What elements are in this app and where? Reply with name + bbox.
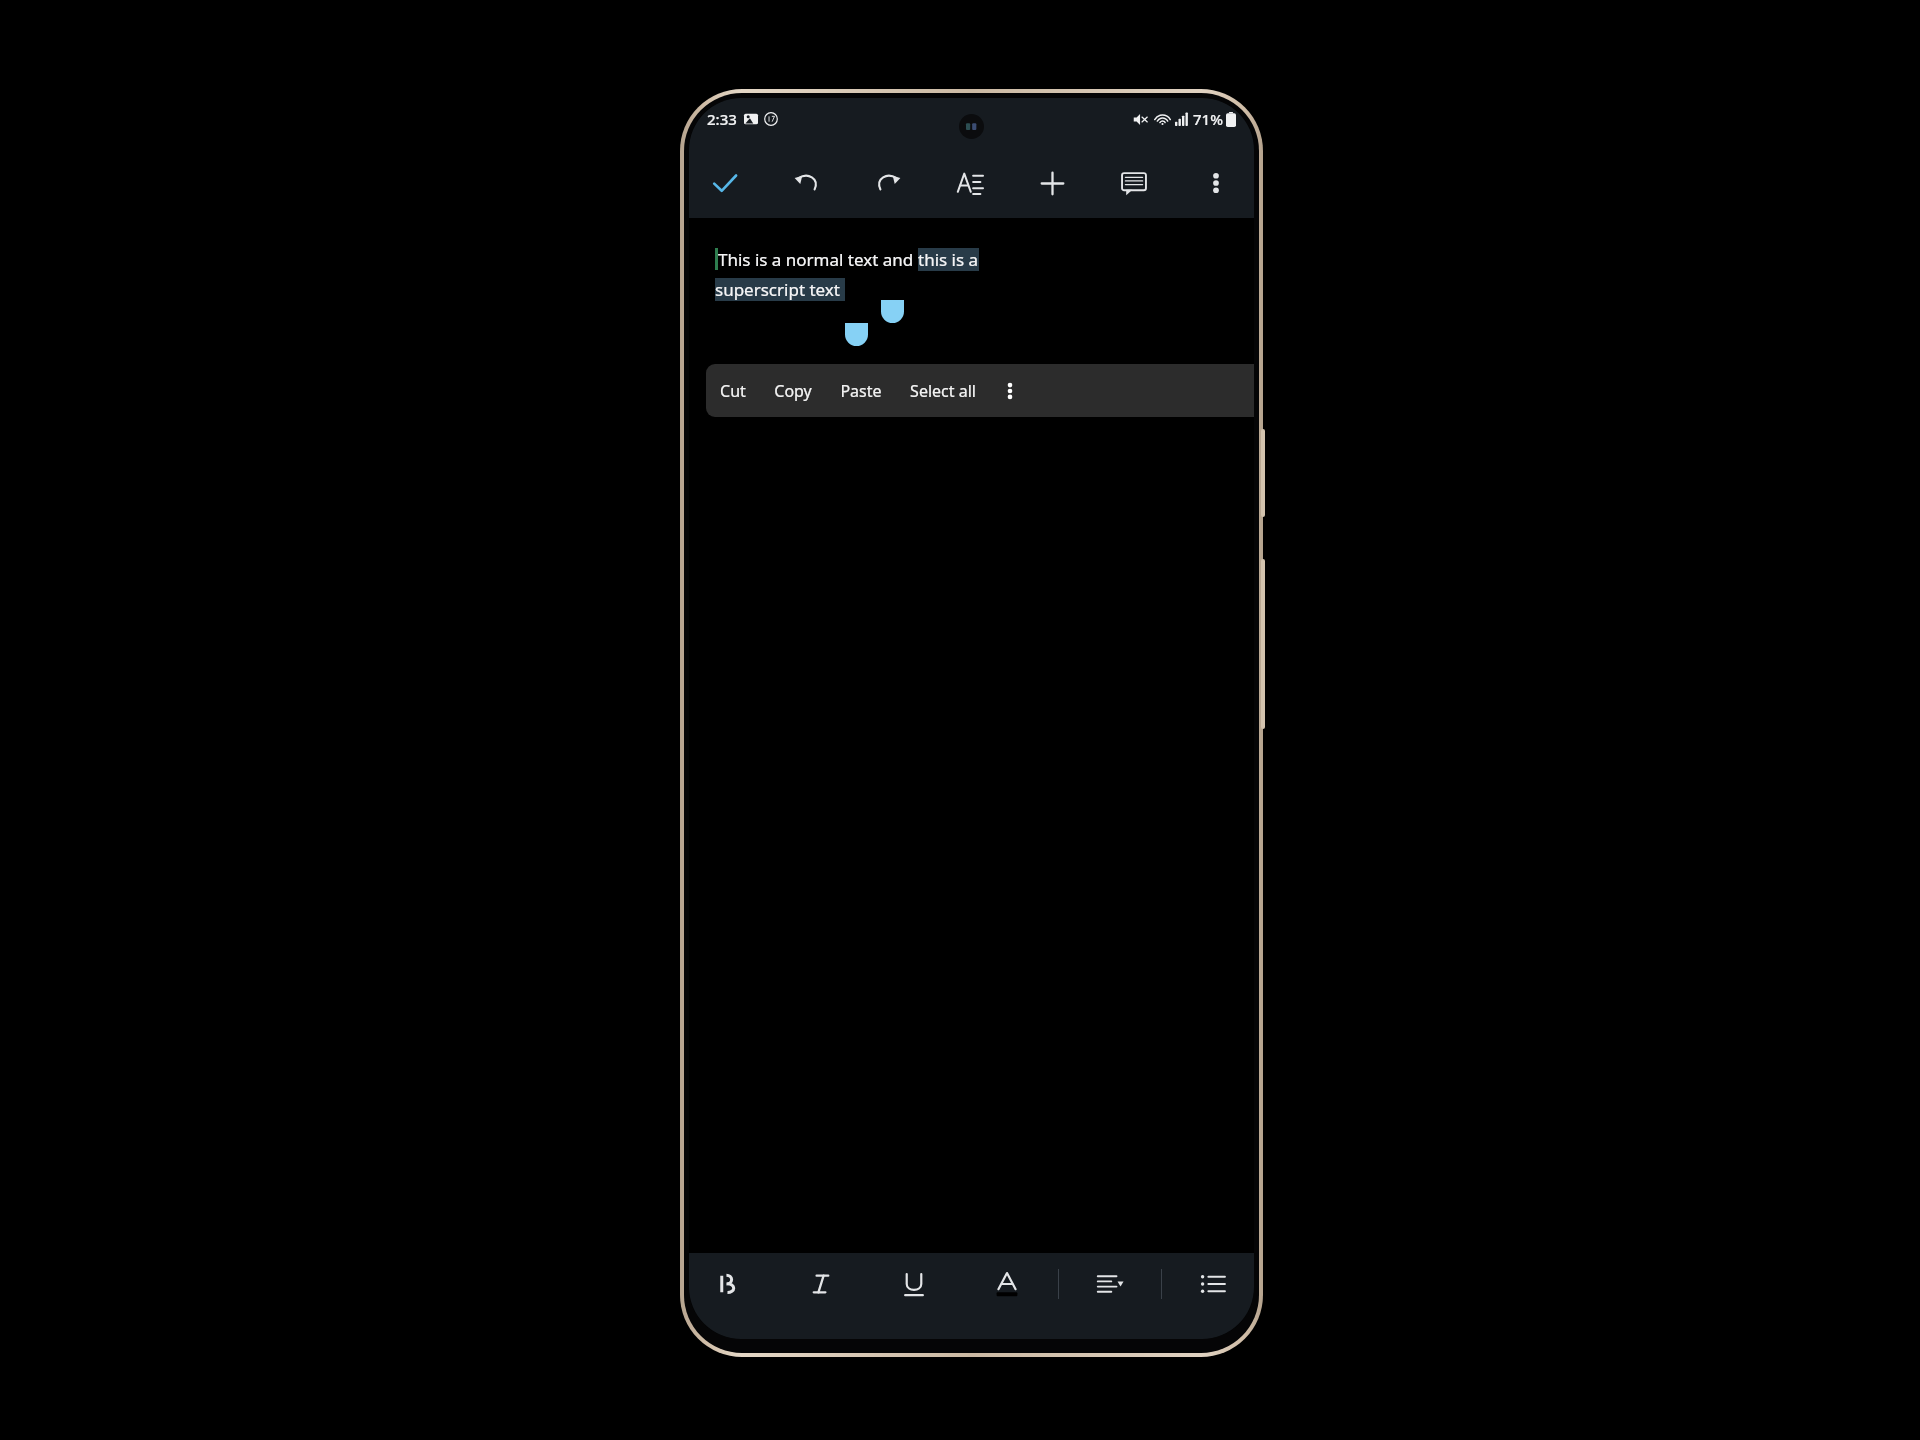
button[interactable]: Text formatting (946, 159, 994, 207)
staticText: 71% (1193, 109, 1223, 129)
button[interactable]: Text colour (984, 1261, 1030, 1307)
staticText: superscript text (715, 278, 845, 301)
button[interactable]: More clipboard options (990, 364, 1030, 417)
button[interactable]: Copy (760, 364, 826, 417)
button[interactable]: Alignment (1087, 1261, 1133, 1307)
staticText: Copy (774, 380, 812, 402)
button[interactable]: Underline (891, 1261, 937, 1307)
staticText: this is a (918, 248, 979, 271)
button[interactable]: Bulleted list (1190, 1261, 1236, 1307)
button[interactable]: Bold (705, 1261, 751, 1307)
button[interactable]: Italic (798, 1261, 844, 1307)
button[interactable]: Paste (826, 364, 896, 417)
staticText: 2:33 (707, 109, 737, 129)
button[interactable]: More options (1192, 159, 1240, 207)
staticText: This is a normal text and (718, 248, 918, 271)
button[interactable]: Comment (1110, 159, 1158, 207)
staticText: Paste (840, 380, 882, 402)
button[interactable]: Cut (706, 364, 760, 417)
staticText: Select all (910, 380, 976, 402)
button[interactable]: Undo (782, 159, 830, 207)
button[interactable]: Done (701, 159, 749, 207)
button[interactable]: Redo (864, 159, 912, 207)
staticText: Cut (720, 380, 746, 402)
button[interactable]: Insert (1028, 159, 1076, 207)
button[interactable]: Select all (896, 364, 990, 417)
